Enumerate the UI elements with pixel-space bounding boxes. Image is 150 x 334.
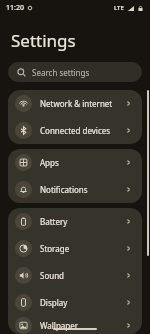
staticText: Network & internet	[40, 98, 125, 109]
staticText: 11:20	[6, 3, 24, 13]
staticText: Display	[40, 297, 125, 308]
button[interactable]: Storage	[8, 235, 142, 262]
staticText: Connected devices	[40, 125, 125, 136]
button[interactable]: Notifications	[8, 176, 142, 203]
staticText: LTE	[114, 4, 124, 12]
button[interactable]: Network & internet	[8, 90, 142, 117]
button[interactable]: Display	[8, 289, 142, 316]
button[interactable]: Battery	[8, 208, 142, 235]
staticText: Notifications	[40, 184, 125, 195]
staticText: Wallpaper	[40, 320, 125, 331]
staticText: Sound	[40, 270, 125, 281]
button[interactable]: Search settings	[8, 62, 142, 82]
staticText: Settings	[11, 29, 76, 52]
button[interactable]: Wallpaper	[8, 316, 142, 334]
staticText: Battery	[40, 216, 125, 227]
staticText: Storage	[40, 243, 125, 254]
button[interactable]: Sound	[8, 262, 142, 289]
staticText: Search settings	[32, 67, 90, 78]
staticText: Apps	[40, 157, 125, 168]
button[interactable]: Apps	[8, 149, 142, 176]
button[interactable]: Connected devices	[8, 117, 142, 144]
